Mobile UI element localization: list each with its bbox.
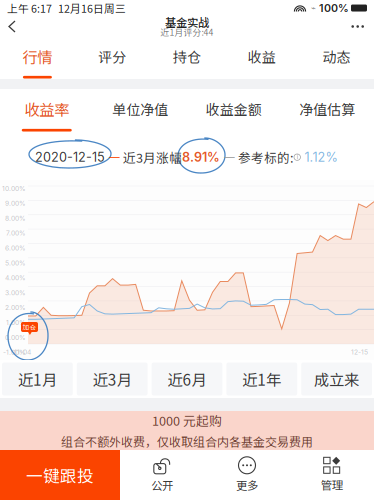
- staticText: 1.00%: [6, 318, 26, 327]
- staticText: ⌁: [305, 3, 316, 13]
- staticText: 净值估算: [299, 99, 355, 119]
- staticText: 持仓: [173, 46, 201, 67]
- button[interactable]: More options: [341, 16, 374, 37]
- button[interactable]: 持仓: [150, 37, 224, 79]
- button[interactable]: 成立来: [301, 362, 372, 395]
- button[interactable]: 更多: [205, 450, 289, 500]
- staticText: 1000 元起购: [152, 411, 222, 429]
- staticText: [105, 149, 109, 165]
- staticText: 3.00%: [5, 289, 26, 297]
- staticText: 近3月涨幅: [120, 148, 182, 166]
- staticText: 公开: [151, 477, 173, 493]
- button[interactable]: Back: [0, 16, 29, 37]
- staticText: —: [109, 151, 120, 164]
- staticText: i: [297, 153, 298, 161]
- button[interactable]: 单位净值: [93, 89, 187, 132]
- staticText: 评分: [98, 46, 126, 67]
- staticText: 6.00%: [5, 244, 26, 252]
- button[interactable]: 动态: [299, 37, 374, 79]
- button[interactable]: 收益率: [0, 89, 93, 132]
- staticText: 行情: [22, 45, 52, 67]
- button[interactable]: 一键跟投: [0, 450, 120, 500]
- staticText: -1.00%: [3, 348, 26, 356]
- staticText: 5.00%: [5, 259, 26, 267]
- staticText: 基金实战: [165, 14, 209, 30]
- button[interactable]: 收益金额: [187, 89, 280, 132]
- staticText: 8.00%: [5, 214, 26, 222]
- staticText: 成立来: [314, 368, 359, 390]
- button[interactable]: 近1年: [226, 362, 297, 395]
- staticText: 一键跟投: [26, 463, 94, 487]
- button[interactable]: 近1月: [2, 362, 73, 395]
- staticText: 更多: [236, 477, 258, 493]
- staticText: 上午 6:17: [7, 0, 52, 16]
- staticText: 8.91%: [182, 149, 220, 165]
- button[interactable]: 管理: [289, 450, 374, 500]
- staticText: 2.00%: [5, 304, 26, 312]
- staticText: 管理: [321, 476, 343, 493]
- staticText: 组合不额外收费，仅收取组合内各基金交易费用: [61, 432, 313, 450]
- staticText: 11-04: [14, 348, 31, 356]
- staticText: —: [224, 151, 235, 164]
- button[interactable]: 净值估算: [280, 89, 374, 132]
- staticText: 参考标的:: [235, 148, 294, 166]
- staticText: 7.00%: [6, 229, 26, 237]
- staticText: 动态: [323, 46, 351, 67]
- staticText: 收益: [248, 46, 276, 67]
- staticText: 0.00%: [5, 333, 26, 341]
- staticText: 收益金额: [206, 99, 262, 119]
- button[interactable]: 近6月: [152, 362, 222, 395]
- staticText: 单位净值: [112, 99, 168, 119]
- staticText: 近1月评分:44: [160, 26, 213, 38]
- staticText: 近3月: [93, 368, 132, 390]
- button[interactable]: 近3月: [77, 362, 148, 395]
- staticText: 12-15: [351, 348, 368, 356]
- staticText: 近1年: [242, 368, 281, 390]
- staticText: [220, 149, 224, 165]
- staticText: 4.00%: [5, 274, 26, 282]
- button[interactable]: 收益: [224, 37, 299, 79]
- staticText: 近6月: [167, 368, 206, 390]
- staticText: 收益率: [24, 98, 69, 120]
- staticText: 加仓: [22, 322, 36, 332]
- staticText: 100%: [316, 1, 349, 14]
- staticText: 近1月: [18, 368, 57, 390]
- staticText: 2020-12-15: [35, 149, 105, 165]
- button[interactable]: 行情: [0, 37, 75, 79]
- staticText: 9.00%: [5, 199, 26, 207]
- staticText: 12月16日周三: [52, 0, 126, 16]
- staticText: 10.00%: [2, 184, 26, 192]
- staticText: 1.12%: [300, 149, 337, 165]
- button[interactable]: 公开: [120, 450, 205, 500]
- button[interactable]: 评分: [75, 37, 150, 79]
